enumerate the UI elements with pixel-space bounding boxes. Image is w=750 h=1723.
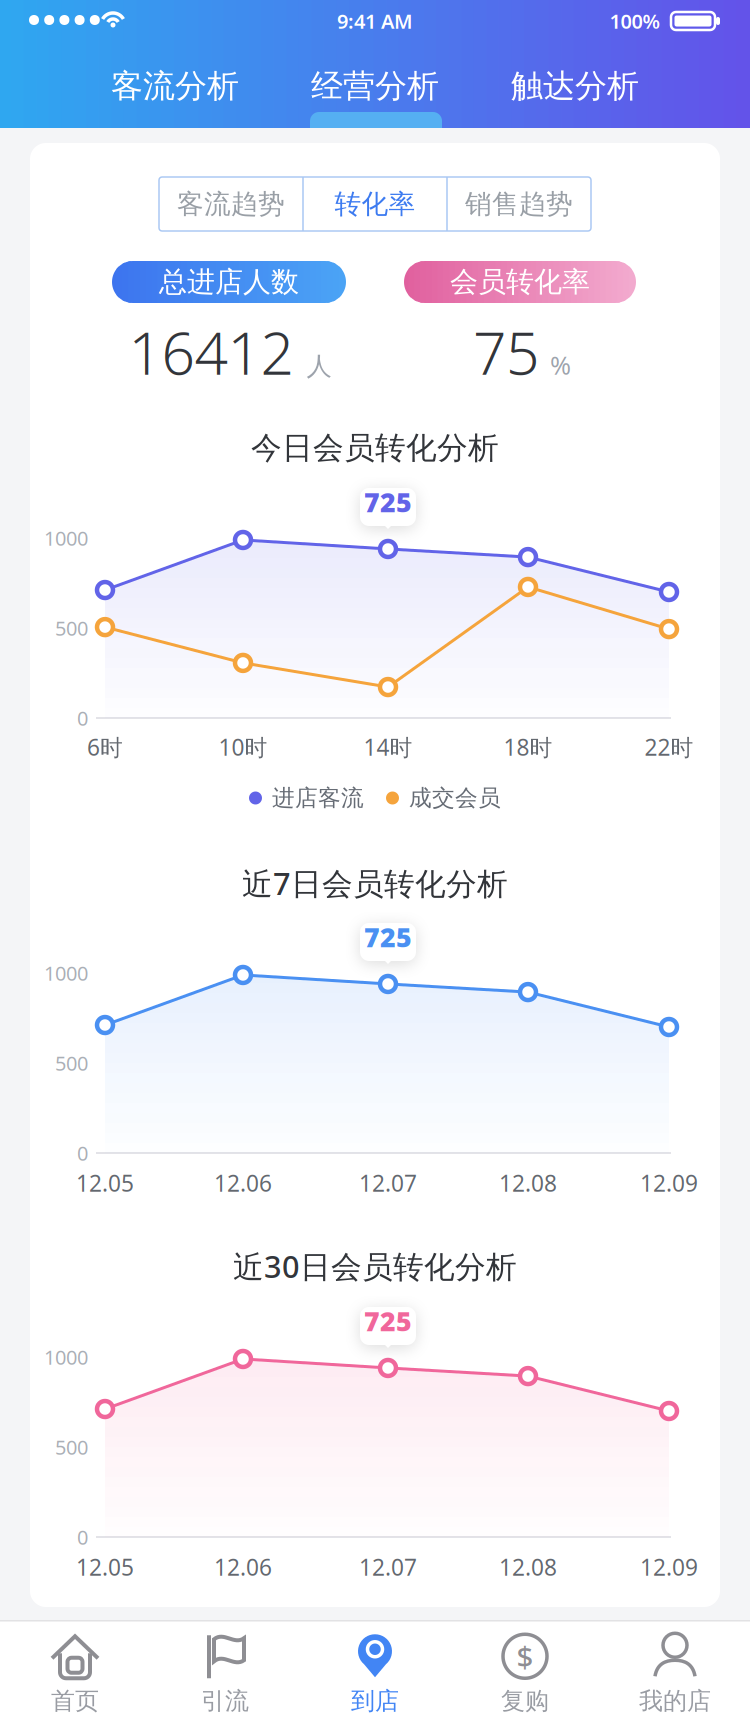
staticText: 客流分析 — [111, 66, 239, 106]
staticText: 0 — [77, 1140, 88, 1166]
staticText: 近7日会员转化分析 — [242, 863, 508, 903]
button[interactable]: 总进店人数 — [112, 261, 346, 303]
staticText: 100% — [609, 8, 660, 34]
staticText: 12.09 — [640, 1168, 698, 1198]
staticText: 今日会员转化分析 — [251, 429, 499, 467]
staticText: 到店 — [351, 1686, 399, 1716]
staticText: 转化率 — [334, 188, 415, 220]
staticText: 我的店 — [639, 1686, 711, 1716]
button[interactable]: 我的店 — [600, 1623, 750, 1723]
button[interactable]: 客流分析 — [85, 58, 265, 114]
staticText: 0 — [77, 1524, 88, 1550]
button[interactable]: $ — [450, 1623, 600, 1723]
button[interactable]: 销售趋势 — [447, 177, 591, 231]
staticText: 10时 — [218, 732, 267, 762]
staticText: 0 — [77, 705, 88, 731]
staticText: 12.08 — [499, 1552, 557, 1582]
staticText: 6时 — [87, 732, 123, 762]
staticText: 1000 — [44, 525, 88, 551]
staticText: 进店客流 — [272, 784, 364, 812]
button[interactable]: 触达分析 — [485, 58, 665, 114]
staticText: 1000 — [44, 1344, 88, 1370]
staticText: 经营分析 — [311, 66, 439, 106]
button[interactable]: 会员转化率 — [404, 261, 636, 303]
staticText: 16412 — [128, 313, 293, 391]
staticText: 725 — [364, 1303, 412, 1339]
staticText: 75 — [473, 313, 539, 391]
staticText: 22时 — [644, 732, 693, 762]
staticText: 725 — [364, 919, 412, 955]
staticText: 12.06 — [214, 1552, 272, 1582]
staticText: 近30日会员转化分析 — [233, 1246, 517, 1286]
staticText: 12.09 — [640, 1552, 698, 1582]
button[interactable]: 引流 — [150, 1623, 300, 1723]
staticText: 人 — [306, 351, 331, 382]
staticText: 成交会员 — [409, 784, 501, 812]
staticText: 500 — [55, 615, 88, 641]
staticText: % — [550, 348, 571, 382]
staticText: 引流 — [201, 1686, 249, 1716]
staticText: 复购 — [501, 1686, 549, 1716]
staticText: 销售趋势 — [465, 188, 573, 220]
staticText: 客流趋势 — [177, 188, 285, 220]
staticText: 9:41 AM — [337, 8, 413, 34]
staticText: 12.07 — [359, 1552, 417, 1582]
staticText: 12.06 — [214, 1168, 272, 1198]
staticText: 触达分析 — [511, 66, 639, 106]
button[interactable]: 客流趋势 — [159, 177, 303, 231]
staticText: 12.05 — [76, 1168, 134, 1198]
staticText: 18时 — [503, 732, 552, 762]
staticText: 12.05 — [76, 1552, 134, 1582]
staticText: $ — [516, 1637, 533, 1676]
staticText: 500 — [55, 1434, 88, 1460]
staticText: 会员转化率 — [450, 265, 590, 299]
staticText: 首页 — [51, 1686, 99, 1716]
staticText: 12.08 — [499, 1168, 557, 1198]
staticText: 总进店人数 — [159, 265, 299, 299]
staticText: 725 — [364, 484, 412, 520]
staticText: 500 — [55, 1050, 88, 1076]
staticText: 1000 — [44, 960, 88, 986]
staticText: 14时 — [363, 732, 412, 762]
button[interactable]: 经营分析 — [285, 58, 465, 114]
button[interactable]: 转化率 — [303, 177, 447, 231]
button[interactable]: 首页 — [0, 1623, 150, 1723]
button[interactable]: 到店 — [300, 1623, 450, 1723]
staticText: 12.07 — [359, 1168, 417, 1198]
